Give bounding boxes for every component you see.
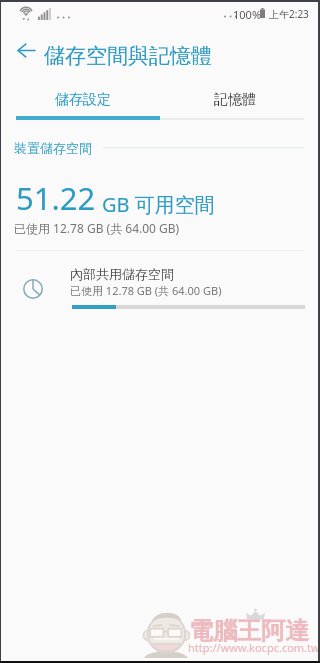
- staticText: 100%: [233, 7, 262, 22]
- button[interactable]: 記憶體: [160, 86, 320, 118]
- staticText: 已使用 12.78 GB (共 64.00 GB): [70, 283, 222, 298]
- staticText: 51.22: [16, 177, 96, 219]
- staticText: 裝置儲存空間: [14, 140, 92, 156]
- staticText: 記憶體: [214, 91, 256, 109]
- staticText: 已使用 12.78 GB (共 64.00 GB): [14, 220, 180, 236]
- staticText: 電腦王阿達: [189, 616, 309, 646]
- button[interactable]: 儲存設定: [0, 86, 160, 118]
- button[interactable]: Back: [2, 26, 50, 74]
- staticText: 內部共用儲存空間: [70, 266, 174, 282]
- staticText: 儲存設定: [55, 91, 111, 109]
- staticText: 儲存空間與記憶體: [44, 43, 212, 69]
- staticText: GB 可用空間: [102, 191, 215, 218]
- staticText: http://www.kocpc.com.tw: [188, 640, 320, 655]
- staticText: 上午2:23: [269, 7, 309, 21]
- button[interactable]: 內部共用儲存空間: [0, 252, 320, 316]
